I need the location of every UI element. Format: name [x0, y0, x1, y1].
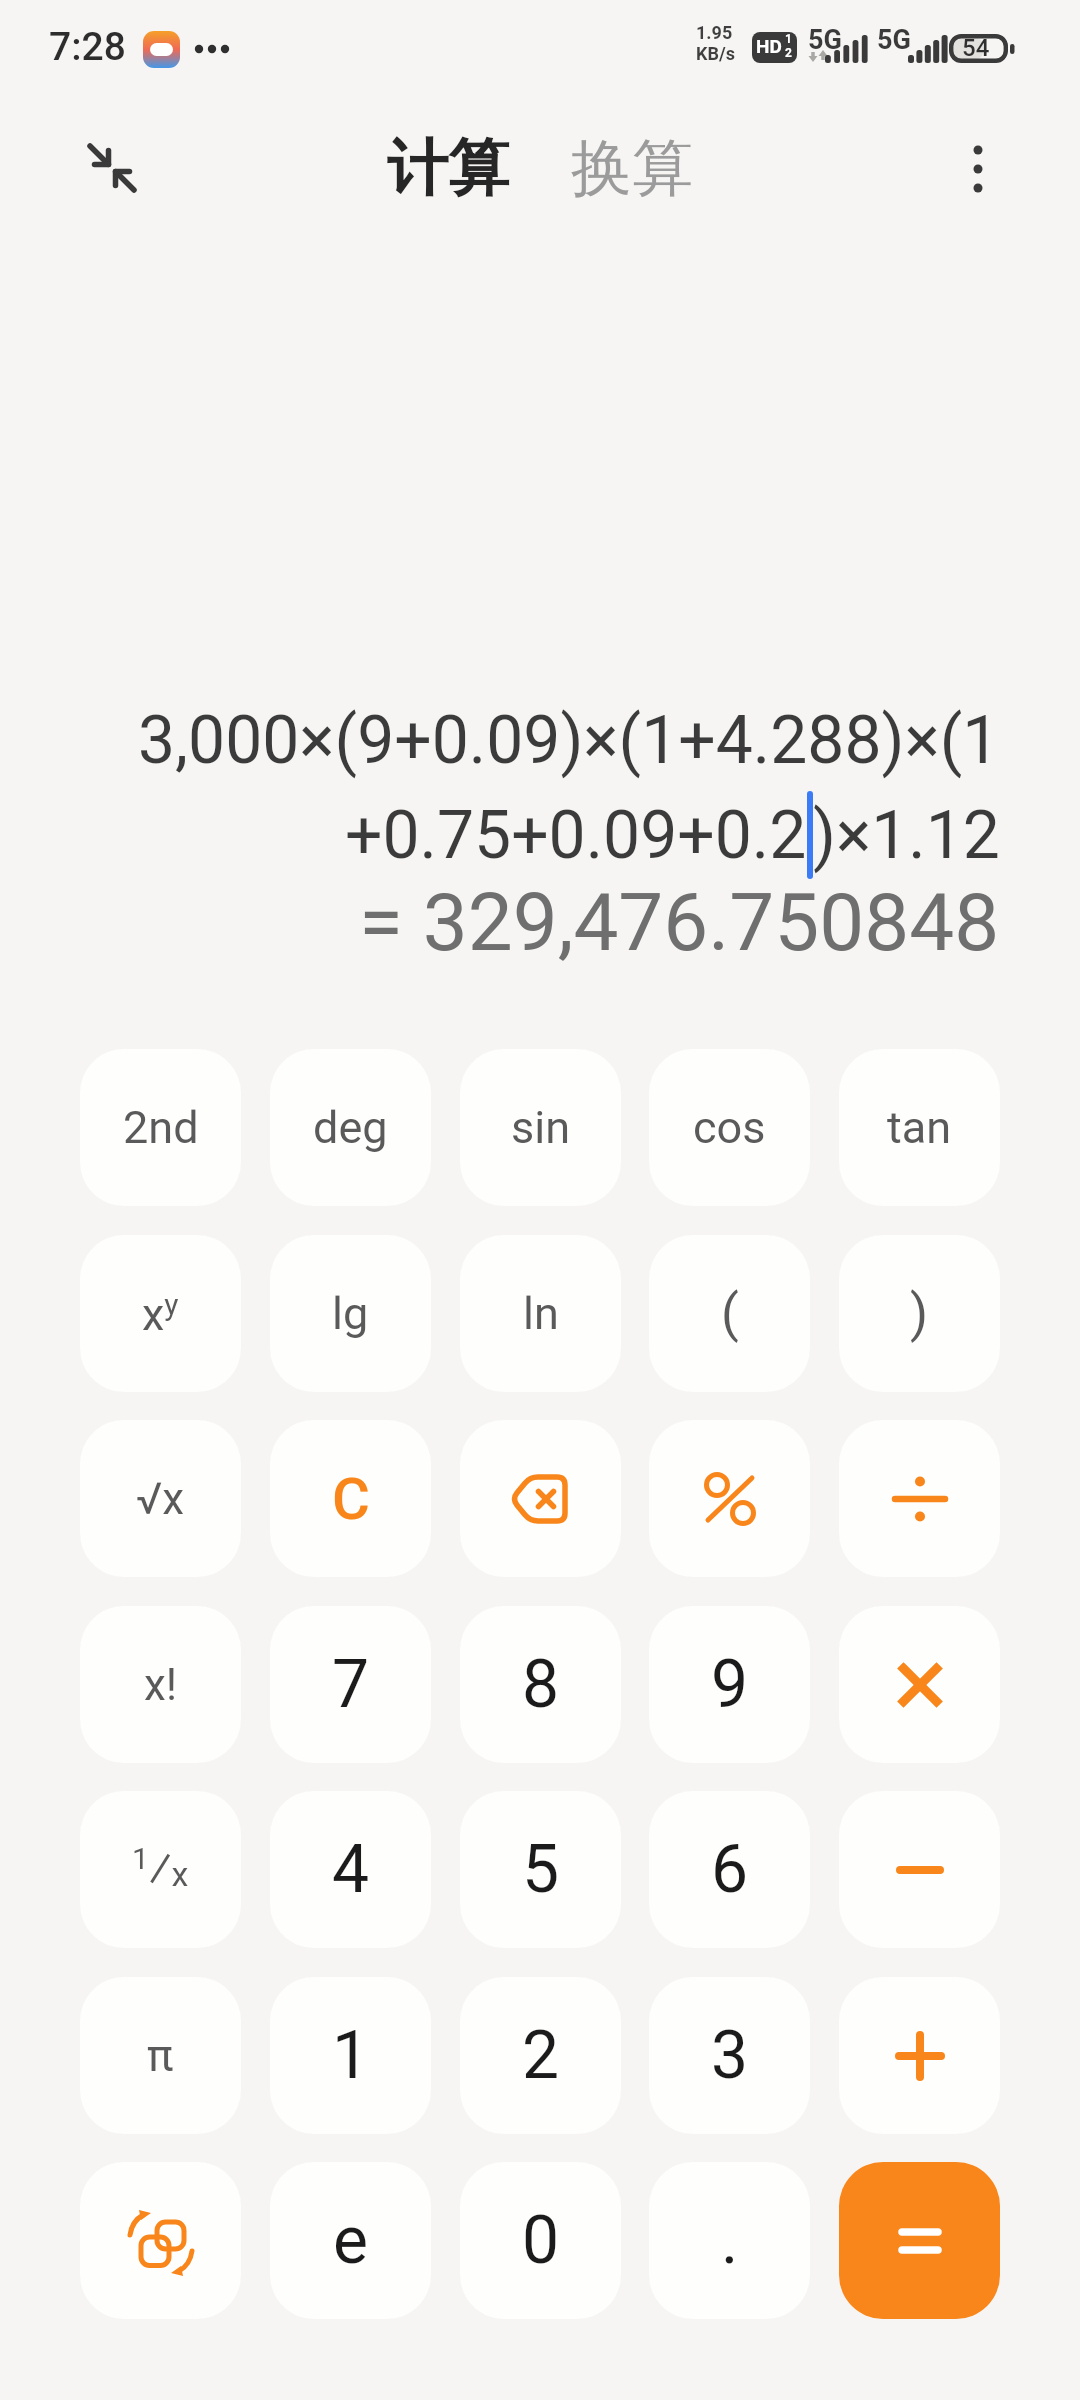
staticText: . — [721, 2202, 739, 2279]
staticText: )×1.12 — [813, 797, 1000, 874]
button[interactable] — [460, 1420, 621, 1577]
staticText: 9 — [711, 1646, 749, 1723]
staticText: 1⁄x — [132, 1840, 189, 1899]
button[interactable]: 1 — [270, 1977, 431, 2134]
staticText: 4 — [332, 1831, 370, 1908]
button[interactable]: 1⁄x — [80, 1791, 241, 1948]
staticText: 5 — [522, 1831, 560, 1908]
staticText: 5G — [808, 24, 842, 56]
staticText: HD — [756, 35, 782, 57]
button[interactable]: 6 — [649, 1791, 810, 1948]
button[interactable]: 3 — [649, 1977, 810, 2134]
button[interactable]: x! — [80, 1606, 241, 1763]
button[interactable]: e — [270, 2162, 431, 2319]
button[interactable]: 计算 — [387, 130, 509, 207]
button[interactable]: 换算 — [571, 130, 693, 207]
staticText: = 329,476.750848 — [359, 876, 1000, 970]
staticText: sin — [511, 1101, 571, 1154]
button[interactable]: 9 — [649, 1606, 810, 1763]
staticText: 0 — [522, 2202, 560, 2279]
staticText: ) — [910, 1283, 929, 1344]
button[interactable] — [839, 2162, 1000, 2319]
staticText: 5G — [877, 24, 911, 56]
button[interactable] — [80, 2162, 241, 2319]
button[interactable]: ( — [649, 1235, 810, 1392]
button[interactable]: sin — [460, 1049, 621, 1206]
staticText: √x — [136, 1473, 185, 1525]
button[interactable]: 2 — [460, 1977, 621, 2134]
staticText: 7:28 — [49, 24, 126, 70]
button[interactable] — [839, 1977, 1000, 2134]
button[interactable]: π — [80, 1977, 241, 2134]
staticText: ln — [523, 1287, 559, 1340]
staticText: 1.95 KB/s — [696, 22, 735, 64]
button[interactable] — [839, 1791, 1000, 1948]
button[interactable]: . — [649, 2162, 810, 2319]
button[interactable]: 2nd — [80, 1049, 241, 1206]
staticText: ( — [721, 1283, 739, 1344]
button[interactable]: cos — [649, 1049, 810, 1206]
button[interactable] — [649, 1420, 810, 1577]
staticText: 7 — [332, 1646, 370, 1723]
staticText: 54 — [962, 34, 990, 62]
staticText: 2 — [785, 46, 792, 60]
button[interactable] — [839, 1606, 1000, 1763]
button[interactable]: 4 — [270, 1791, 431, 1948]
staticText: e — [333, 2202, 368, 2279]
button[interactable] — [962, 145, 994, 193]
staticText: 1 — [332, 2017, 370, 2094]
staticText: 2 — [522, 2017, 560, 2094]
staticText: C — [332, 1465, 370, 1533]
button[interactable]: 5 — [460, 1791, 621, 1948]
button[interactable]: 7 — [270, 1606, 431, 1763]
button[interactable]: ln — [460, 1235, 621, 1392]
button[interactable]: C — [270, 1420, 431, 1577]
button[interactable]: tan — [839, 1049, 1000, 1206]
staticText: x! — [144, 1659, 178, 1711]
button[interactable]: √x — [80, 1420, 241, 1577]
staticText: π — [147, 2030, 174, 2082]
staticText: cos — [693, 1101, 766, 1154]
staticText: deg — [313, 1101, 388, 1154]
staticText: 2nd — [123, 1101, 199, 1154]
staticText: 3,000×(9+0.09)×(1+4.288)×(1 — [138, 702, 1000, 779]
button[interactable] — [88, 144, 136, 192]
button[interactable]: 0 — [460, 2162, 621, 2319]
staticText: tan — [887, 1101, 952, 1154]
staticText: 8 — [522, 1646, 560, 1723]
staticText: lg — [332, 1287, 369, 1340]
staticText: 6 — [711, 1831, 749, 1908]
button[interactable]: lg — [270, 1235, 431, 1392]
button[interactable] — [839, 1420, 1000, 1577]
staticText: xy — [142, 1287, 179, 1341]
staticText: 3 — [711, 2017, 749, 2094]
button[interactable]: xy — [80, 1235, 241, 1392]
button[interactable]: 8 — [460, 1606, 621, 1763]
staticText: +0.75+0.09+0.2 — [345, 797, 807, 874]
button[interactable]: deg — [270, 1049, 431, 1206]
button[interactable]: ) — [839, 1235, 1000, 1392]
staticText: 1 — [785, 32, 792, 46]
